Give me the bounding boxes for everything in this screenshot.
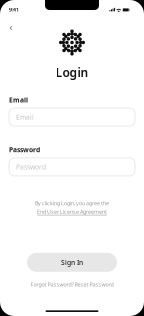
staticText: End User License Agreement	[37, 208, 107, 215]
staticText: Email	[16, 113, 34, 122]
staticText: Forgot Password? Reset Password	[30, 281, 113, 288]
staticText: Email	[9, 95, 28, 104]
staticText: Password	[16, 162, 46, 171]
staticText: Sign In	[61, 258, 83, 267]
staticText: 9:41	[9, 6, 19, 13]
button[interactable]: Forgot Password? Reset Password	[30, 281, 113, 288]
staticText: Login	[55, 64, 88, 80]
staticText: By clicking Login, you agree the	[35, 200, 109, 207]
button[interactable]: End User License Agreement	[37, 208, 107, 215]
button[interactable]: Back	[6, 20, 15, 32]
staticText: Password	[9, 145, 40, 154]
button[interactable]: Sign In	[27, 253, 117, 272]
